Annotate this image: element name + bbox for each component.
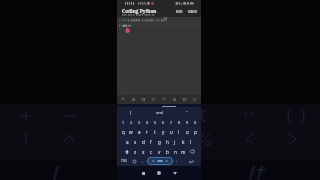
button[interactable]: 7 <box>167 118 175 127</box>
button[interactable]: and <box>145 107 173 118</box>
staticText: 3 <box>138 120 141 125</box>
button[interactable]: o <box>183 127 191 137</box>
button[interactable]: n <box>171 147 179 156</box>
staticText: 6 <box>162 120 165 125</box>
button[interactable]: " <box>173 107 201 118</box>
button[interactable]: . <box>173 156 181 166</box>
staticText: Coding Python <box>122 8 157 14</box>
staticText: and <box>156 110 163 115</box>
staticText: m <box>181 149 186 155</box>
staticText: 0 <box>194 120 197 125</box>
button[interactable]: Paste <box>170 95 179 104</box>
staticText: h <box>166 139 169 145</box>
button[interactable]: b <box>163 147 171 156</box>
staticText: 2 <box>130 120 133 125</box>
button[interactable]: MENU <box>187 9 198 15</box>
staticText: q <box>122 129 125 135</box>
button[interactable]: Enter <box>181 156 201 166</box>
staticText: 5 <box>154 120 157 125</box>
staticText: RUN <box>176 10 183 14</box>
button[interactable]: Tab <box>139 95 148 104</box>
button[interactable]: f <box>147 137 155 147</box>
staticText: r <box>146 129 148 135</box>
staticText: ?123 <box>121 159 127 163</box>
staticText: , <box>142 158 144 164</box>
button[interactable]: Home <box>152 166 166 180</box>
staticText: x <box>142 149 145 155</box>
button[interactable]: Recents <box>136 166 150 180</box>
button[interactable]: 5 <box>151 118 159 127</box>
button[interactable]: Search <box>149 95 158 104</box>
staticText: 1 <box>122 120 125 125</box>
button[interactable]: Back <box>168 166 182 180</box>
button[interactable]: Redo <box>129 95 138 104</box>
staticText: g <box>158 139 161 145</box>
button[interactable]: g <box>155 137 163 147</box>
button[interactable]: Emoji <box>130 156 139 166</box>
staticText: k <box>182 139 185 145</box>
staticText: u <box>170 129 173 135</box>
button[interactable]: i <box>175 127 183 137</box>
staticText: MENU <box>188 10 197 14</box>
button[interactable]: h <box>163 137 171 147</box>
button[interactable]: k <box>179 137 187 147</box>
staticText: b <box>166 149 169 155</box>
button[interactable]: 1 <box>119 118 127 127</box>
button[interactable]: 6 <box>159 118 167 127</box>
staticText: n <box>174 149 177 155</box>
staticText: 9 <box>186 120 189 125</box>
button[interactable]: m <box>179 147 187 156</box>
button[interactable]: Comment <box>180 95 189 104</box>
staticText: y <box>162 129 165 135</box>
staticText: 4 <box>146 120 149 125</box>
button[interactable]: Space <box>147 157 173 165</box>
button[interactable]: 0 <box>191 118 199 127</box>
button[interactable]: p <box>191 127 199 137</box>
button[interactable]: a <box>123 137 131 147</box>
staticText: z <box>134 149 137 155</box>
button[interactable]: j <box>171 137 179 147</box>
staticText: l <box>190 139 192 145</box>
staticText: ] <box>130 110 132 115</box>
staticText: 7 <box>170 120 173 125</box>
staticText: w <box>129 129 133 135</box>
button[interactable]: z <box>131 147 139 156</box>
button[interactable]: , <box>139 156 147 166</box>
button[interactable]: 2 <box>127 118 135 127</box>
staticText: t <box>154 129 156 135</box>
button[interactable]: d <box>139 137 147 147</box>
staticText: c <box>150 149 153 155</box>
staticText: v <box>158 149 161 155</box>
button[interactable]: Copy <box>160 95 169 104</box>
button[interactable]: More <box>190 95 199 104</box>
staticText: " <box>186 110 188 115</box>
staticText: a <box>126 139 129 145</box>
staticText: 8 <box>178 120 181 125</box>
button[interactable]: x <box>139 147 147 156</box>
button[interactable]: s <box>131 137 139 147</box>
button[interactable]: q <box>119 127 127 137</box>
button[interactable]: RUN <box>175 9 184 15</box>
button[interactable]: t <box>151 127 159 137</box>
button[interactable]: w <box>127 127 135 137</box>
button[interactable]: Shift <box>122 147 131 156</box>
button[interactable]: ] <box>117 107 145 118</box>
button[interactable]: l <box>187 137 195 147</box>
staticText: j <box>174 139 176 145</box>
button[interactable]: u <box>167 127 175 137</box>
staticText: e <box>138 129 141 135</box>
button[interactable]: y <box>159 127 167 137</box>
button[interactable]: Undo <box>119 95 128 104</box>
button[interactable]: Symbols <box>117 156 130 166</box>
button[interactable]: r <box>143 127 151 137</box>
button[interactable]: 9 <box>183 118 191 127</box>
button[interactable]: v <box>155 147 163 156</box>
staticText: . <box>176 158 178 164</box>
button[interactable]: 4 <box>143 118 151 127</box>
button[interactable]: 3 <box>135 118 143 127</box>
button[interactable]: 8 <box>175 118 183 127</box>
button[interactable]: e <box>135 127 143 137</box>
button[interactable]: Backspace <box>187 147 196 156</box>
staticText: p <box>194 129 197 135</box>
button[interactable]: c <box>147 147 155 156</box>
